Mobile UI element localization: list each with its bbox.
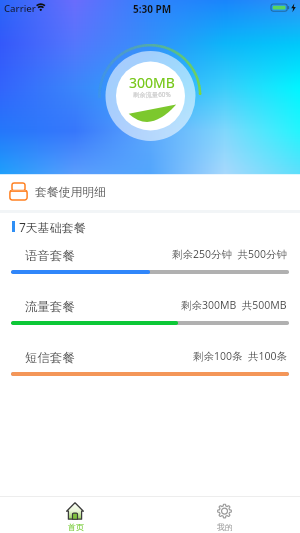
button[interactable]: 首页 Home bbox=[0, 498, 150, 533]
button[interactable]: 短信套餐 bbox=[0, 344, 300, 395]
staticText: 剩余100条 共100条 bbox=[193, 349, 287, 363]
staticText: 我的 bbox=[217, 522, 233, 532]
button[interactable]: 流量套餐 bbox=[0, 293, 300, 344]
staticText: 流量套餐 bbox=[25, 299, 75, 315]
button[interactable]: 我的 Profile bbox=[150, 498, 300, 533]
staticText: 剩余流量60% bbox=[133, 90, 171, 99]
staticText: 短信套餐 bbox=[25, 350, 75, 366]
staticText: 首页 bbox=[68, 522, 84, 532]
staticText: Carrier bbox=[4, 2, 36, 15]
button[interactable]: 语音套餐 bbox=[0, 242, 300, 293]
button[interactable]: 套餐使用明细 bbox=[0, 174, 300, 210]
staticText: 7天基础套餐 bbox=[19, 219, 86, 235]
staticText: 套餐使用明细 bbox=[35, 185, 106, 200]
staticText: 剩余250分钟 共500分钟 bbox=[172, 247, 287, 261]
staticText: 剩余300MB 共500MB bbox=[181, 298, 287, 312]
staticText: 5:30 PM bbox=[133, 2, 172, 16]
staticText: 300MB bbox=[129, 73, 175, 92]
staticText: 语音套餐 bbox=[25, 248, 75, 264]
